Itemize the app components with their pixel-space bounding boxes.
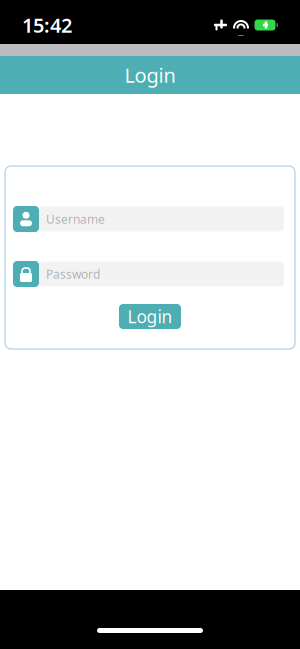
staticText: 15:42 (22, 12, 72, 38)
button[interactable]: Login (119, 304, 181, 329)
staticText: Username (46, 211, 105, 227)
staticText: Login (124, 62, 175, 88)
staticText: Login (127, 305, 172, 328)
staticText: Password (46, 266, 100, 282)
